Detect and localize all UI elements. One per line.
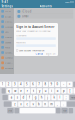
staticText: f — [29, 96, 30, 99]
staticText: Enter your credentials to continue — [16, 29, 50, 32]
button[interactable]: y — [37, 88, 42, 94]
staticText: x — [20, 102, 21, 106]
button[interactable]: Focus — [0, 45, 14, 50]
button[interactable]: 3 — [12, 82, 17, 87]
button[interactable]: n — [42, 101, 48, 107]
staticText: . — [63, 102, 64, 106]
button[interactable]: Wi-Fi — [0, 9, 14, 14]
button[interactable]: j — [45, 95, 50, 100]
button[interactable]: . — [61, 101, 66, 107]
button[interactable]: v — [30, 101, 36, 107]
button[interactable]: o — [55, 88, 60, 94]
button[interactable]: p — [61, 88, 67, 94]
staticText: Settings — [1, 4, 12, 8]
staticText: s — [17, 96, 18, 99]
button[interactable] — [4, 101, 11, 107]
button[interactable]: return — [70, 95, 75, 100]
button[interactable]: d — [21, 95, 26, 100]
button[interactable]: - — [61, 82, 66, 87]
button[interactable]: x — [18, 101, 23, 107]
button[interactable]: m — [49, 101, 54, 107]
button[interactable]: Hotspot — [0, 24, 14, 29]
staticText: 8 — [44, 82, 46, 86]
button[interactable]: , — [55, 101, 60, 107]
button[interactable]: 2 — [6, 82, 11, 87]
button[interactable]: Control Ctr — [0, 60, 14, 65]
staticText: d — [22, 96, 24, 99]
button[interactable]: 1 — [0, 82, 5, 87]
button[interactable]: Sign In — [46, 52, 56, 55]
button[interactable]: Sounds — [0, 40, 14, 44]
staticText: Username — [16, 34, 26, 37]
staticText: c — [26, 102, 27, 106]
button[interactable]: Bluetooth — [0, 14, 14, 19]
button[interactable]: iCloud — [16, 9, 73, 14]
button[interactable]: b — [36, 101, 42, 107]
button[interactable] — [14, 108, 19, 113]
button[interactable]: Screen Time — [0, 50, 14, 55]
button[interactable]: Display — [0, 66, 14, 70]
button[interactable]: 8 — [43, 82, 48, 87]
button[interactable] — [68, 108, 73, 113]
button[interactable]: ; — [63, 95, 69, 100]
button[interactable]: Gmail — [16, 14, 73, 19]
staticText: b — [38, 102, 40, 106]
staticText: Focus — [5, 46, 10, 49]
staticText: 1 — [2, 82, 4, 86]
button[interactable]: .?123 — [7, 108, 14, 113]
staticText: 100% — [65, 0, 70, 4]
button[interactable]: .?123 — [61, 108, 68, 113]
button[interactable] — [67, 101, 75, 107]
button[interactable]: Cancel — [35, 52, 43, 55]
button[interactable]: Cellular — [0, 19, 14, 24]
button[interactable]: 5 — [24, 82, 30, 87]
button[interactable]: z — [12, 101, 17, 107]
button[interactable]: k — [51, 95, 57, 100]
button[interactable]: ] — [73, 88, 75, 94]
button[interactable] — [2, 88, 6, 94]
staticText: 6 — [32, 82, 34, 86]
button[interactable]: General — [0, 55, 14, 60]
button[interactable]: r — [25, 88, 30, 94]
button[interactable]: 6 — [30, 82, 36, 87]
staticText: Control Ctr — [5, 61, 13, 64]
button[interactable]: e — [19, 88, 24, 94]
button[interactable]: = — [67, 82, 72, 87]
staticText: o — [57, 89, 59, 93]
button[interactable]: u — [43, 88, 48, 94]
button[interactable]: 0 — [55, 82, 60, 87]
button[interactable]: a — [9, 95, 14, 100]
button[interactable]: g — [33, 95, 38, 100]
button[interactable] — [73, 82, 75, 87]
button[interactable]: w — [12, 88, 18, 94]
staticText: 9:41 — [2, 0, 9, 4]
button[interactable]: [ — [67, 88, 73, 94]
button[interactable]: h — [39, 95, 44, 100]
staticText: n — [44, 102, 46, 106]
button[interactable]: 9 — [49, 82, 54, 87]
button[interactable]: c — [24, 101, 29, 107]
button[interactable]: q — [6, 88, 12, 94]
staticText: j — [47, 96, 48, 99]
button[interactable]: Save account information — [16, 47, 56, 52]
staticText: Screen Time — [5, 51, 13, 54]
button[interactable] — [56, 108, 61, 113]
button[interactable]: 7 — [37, 82, 42, 87]
button[interactable]: VPN — [0, 30, 14, 34]
button[interactable]: Notifications — [0, 35, 14, 39]
button[interactable]: i — [49, 88, 54, 94]
staticText: v — [32, 102, 33, 106]
button[interactable] — [2, 95, 8, 100]
button[interactable]: t — [31, 88, 36, 94]
staticText: 2 — [8, 82, 10, 86]
button[interactable]: 4 — [18, 82, 24, 87]
button[interactable]: f — [27, 95, 32, 100]
button[interactable]: l — [57, 95, 63, 100]
staticText: g — [35, 96, 37, 99]
staticText: Display — [5, 66, 13, 70]
staticText: w — [14, 89, 16, 93]
staticText: , — [57, 102, 58, 106]
staticText: .?123 — [63, 109, 67, 112]
button[interactable]: s — [15, 95, 20, 100]
